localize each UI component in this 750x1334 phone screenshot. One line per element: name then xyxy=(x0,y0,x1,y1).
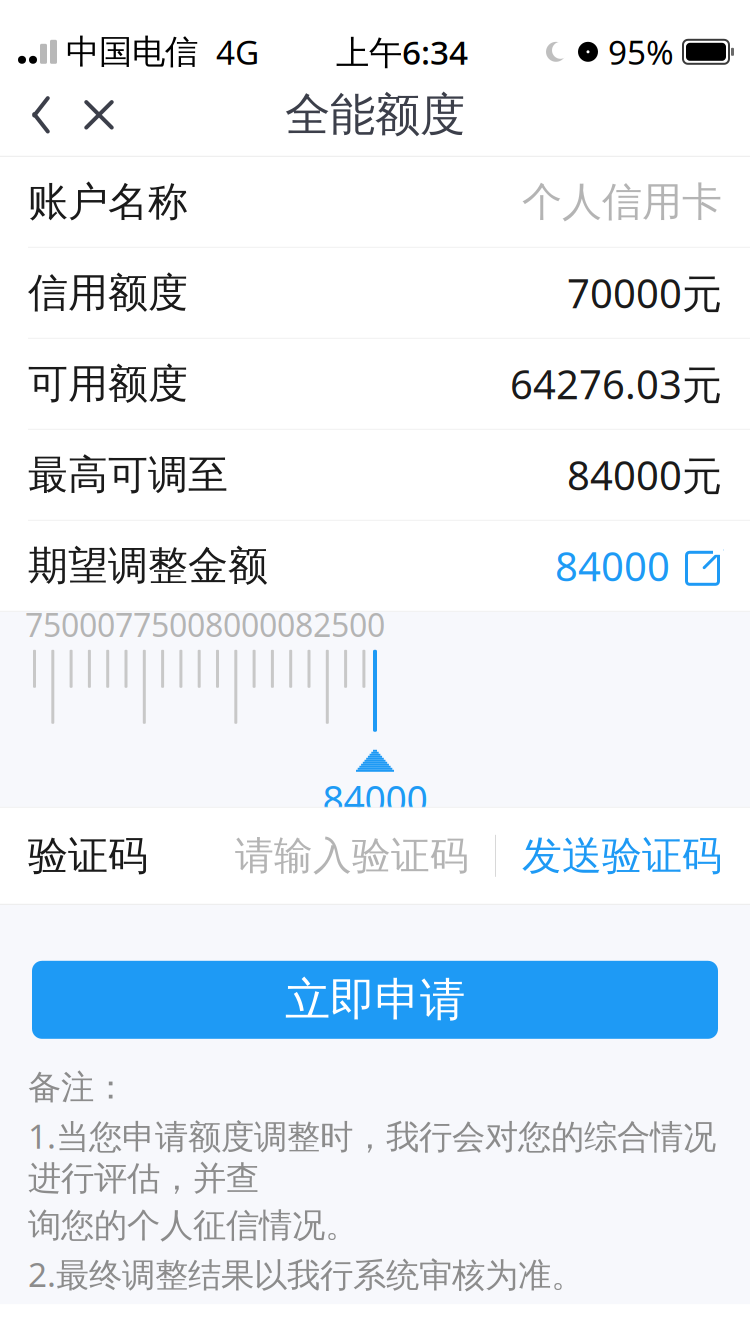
staticText: 2.最终调整结果以我行系统审核为准。 xyxy=(28,1252,584,1296)
staticText: 发送验证码 xyxy=(522,831,722,880)
staticText: 备注： xyxy=(28,1067,127,1108)
staticText: 84000元 xyxy=(567,448,722,501)
staticText: 验证码 xyxy=(28,831,148,880)
staticText: 75000 xyxy=(25,603,115,646)
staticText: 可用额度 xyxy=(28,359,188,408)
staticText: 84000 xyxy=(322,774,427,823)
staticText: 请输入验证码 xyxy=(235,832,469,880)
staticText: 77500 xyxy=(115,603,205,646)
staticText: 64276.03元 xyxy=(510,357,722,410)
staticText: 个人信用卡 xyxy=(522,177,722,226)
staticText: 期望调整金额 xyxy=(28,541,268,590)
staticText: 1.当您申请额度调整时，我行会对您的综合情况进行评估，并查 xyxy=(28,1114,716,1199)
button[interactable]: Close xyxy=(70,86,128,144)
staticText: 最高可调至 xyxy=(28,450,228,499)
staticText: 中国电信 xyxy=(66,31,198,72)
staticText: 全能额度 xyxy=(285,87,465,143)
staticText: 84000 xyxy=(555,539,670,592)
button[interactable]: 发送验证码 xyxy=(496,808,722,904)
staticText: 询您的个人征信情况。 xyxy=(28,1205,358,1246)
staticText: 95% xyxy=(608,30,674,74)
button[interactable]: 立即申请 xyxy=(32,961,718,1039)
staticText: 70000元 xyxy=(567,266,722,319)
staticText: 立即申请 xyxy=(285,972,465,1028)
button[interactable]: 期望调整金额 xyxy=(0,521,750,611)
button[interactable]: Back xyxy=(12,86,70,144)
staticText: 4G xyxy=(216,30,259,74)
staticText: 账户名称 xyxy=(28,177,188,226)
staticText: 上午6:34 xyxy=(336,30,468,74)
staticText: 82500 xyxy=(295,603,385,646)
staticText: 80000 xyxy=(205,603,295,646)
staticText: 信用额度 xyxy=(28,268,188,317)
